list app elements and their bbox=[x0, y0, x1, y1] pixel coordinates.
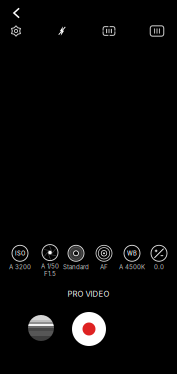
button[interactable]: Gallery bbox=[28, 315, 54, 341]
button[interactable]: Aspect ratio 1 to 1 bbox=[93, 20, 125, 42]
staticText: ISO bbox=[15, 250, 25, 257]
staticText: PRO VIDEO bbox=[67, 289, 109, 299]
button[interactable]: Back bbox=[1, 2, 31, 24]
button[interactable]: Flash off bbox=[46, 20, 78, 42]
staticText: A 3200 bbox=[9, 263, 31, 271]
button[interactable]: A 1/50 bbox=[41, 245, 59, 277]
button[interactable]: WB bbox=[119, 245, 145, 271]
staticText: A 4500K bbox=[119, 263, 145, 271]
button[interactable]: Settings bbox=[0, 20, 32, 42]
button[interactable]: More settings bbox=[141, 20, 173, 42]
staticText: AF bbox=[100, 263, 108, 271]
staticText: WB bbox=[127, 250, 137, 257]
staticText: Standard bbox=[63, 263, 89, 271]
button[interactable]: Standard bbox=[63, 245, 89, 271]
staticText: F1.5 bbox=[44, 270, 56, 277]
button[interactable]: AF bbox=[96, 245, 112, 271]
staticText: 0.0 bbox=[154, 263, 164, 271]
button[interactable]: Record bbox=[72, 312, 106, 346]
button[interactable]: ISO bbox=[9, 245, 31, 271]
button[interactable]: 0.0 bbox=[151, 245, 167, 271]
staticText: A 1/50 bbox=[41, 263, 59, 270]
